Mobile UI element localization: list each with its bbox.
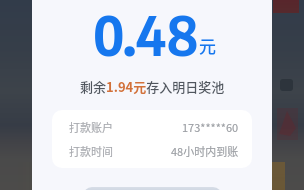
staticText: 打款账户 <box>69 119 113 135</box>
button[interactable] <box>83 187 222 190</box>
staticText: 元 <box>199 33 216 58</box>
staticText: 0.48 <box>93 0 199 67</box>
staticText: 打款时间 <box>69 143 113 159</box>
staticText: 剩余1.94元存入明日奖池 <box>80 77 225 96</box>
staticText: 48小时内到账 <box>171 143 239 159</box>
staticText: 173*****60 <box>182 119 239 135</box>
